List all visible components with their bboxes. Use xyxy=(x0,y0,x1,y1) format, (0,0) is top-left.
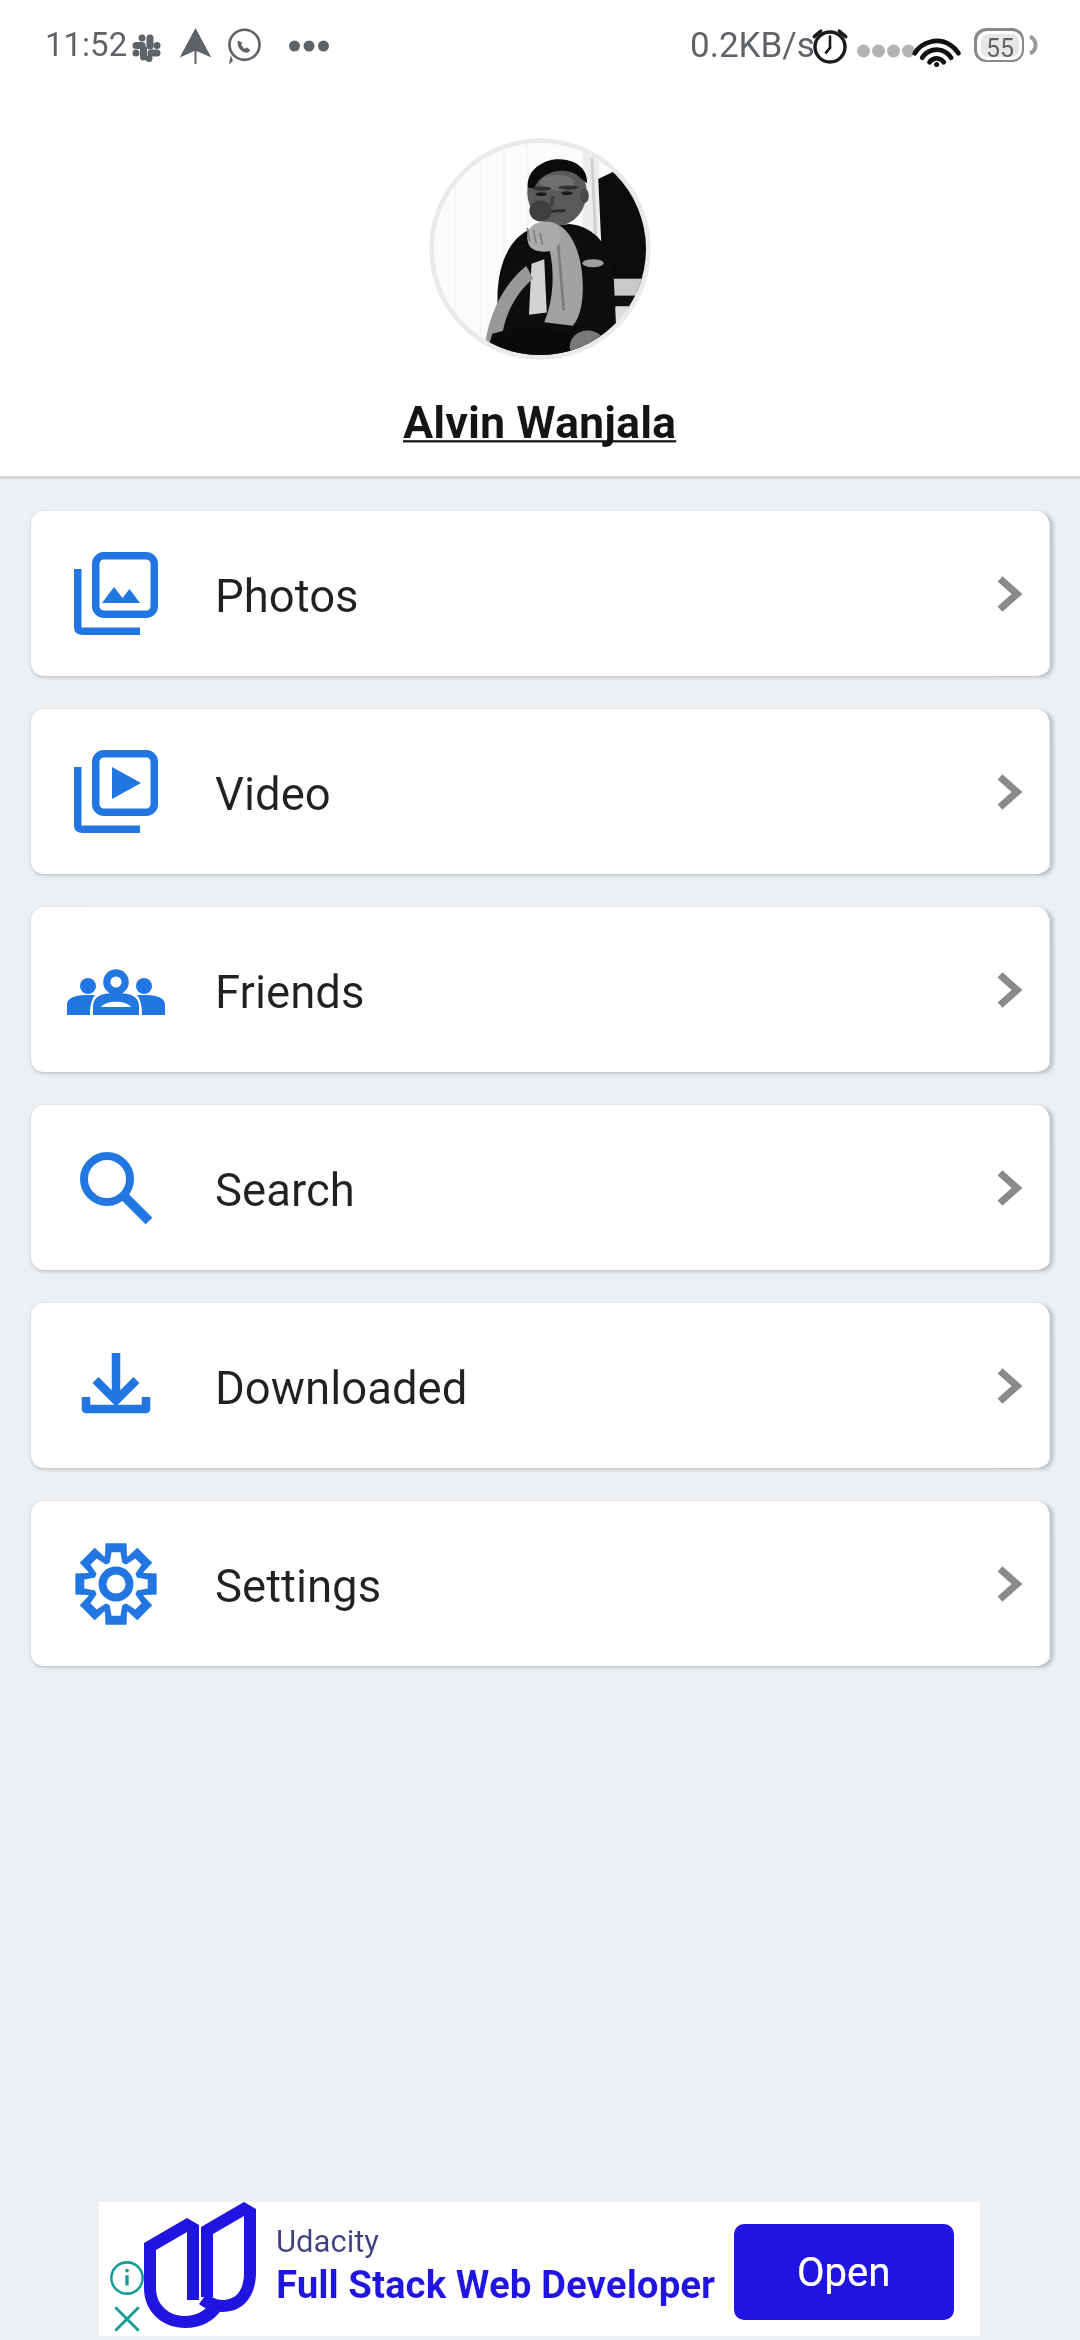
button[interactable]: Ad information xyxy=(108,2259,146,2297)
button[interactable]: Video xyxy=(31,709,1049,874)
staticText: Udacity xyxy=(276,2223,380,2259)
staticText: 55 xyxy=(986,34,1015,57)
staticText: Search xyxy=(215,1164,355,1217)
staticText: 11:52 xyxy=(45,25,128,64)
staticText: Photos xyxy=(215,570,359,623)
button[interactable]: Friends xyxy=(31,907,1049,1072)
button[interactable]: Open xyxy=(734,2224,954,2320)
staticText: Video xyxy=(215,768,331,821)
staticText: Full Stack Web Developer xyxy=(276,2262,716,2307)
button[interactable]: Downloaded xyxy=(31,1303,1049,1468)
staticText: Downloaded xyxy=(215,1362,468,1415)
staticText: Friends xyxy=(215,966,365,1019)
button[interactable]: Search xyxy=(31,1105,1049,1270)
staticText: Settings xyxy=(215,1560,382,1613)
staticText: Alvin Wanjala xyxy=(403,396,677,449)
button[interactable]: Settings xyxy=(31,1501,1049,1666)
staticText: Open xyxy=(797,2249,891,2296)
button[interactable]: Alvin Wanjala xyxy=(403,396,677,449)
button[interactable]: Profile photo xyxy=(429,138,651,360)
button[interactable]: Close ad xyxy=(108,2300,146,2338)
staticText: 0.2KB/s xyxy=(690,25,815,66)
button[interactable]: Photos xyxy=(31,511,1049,676)
